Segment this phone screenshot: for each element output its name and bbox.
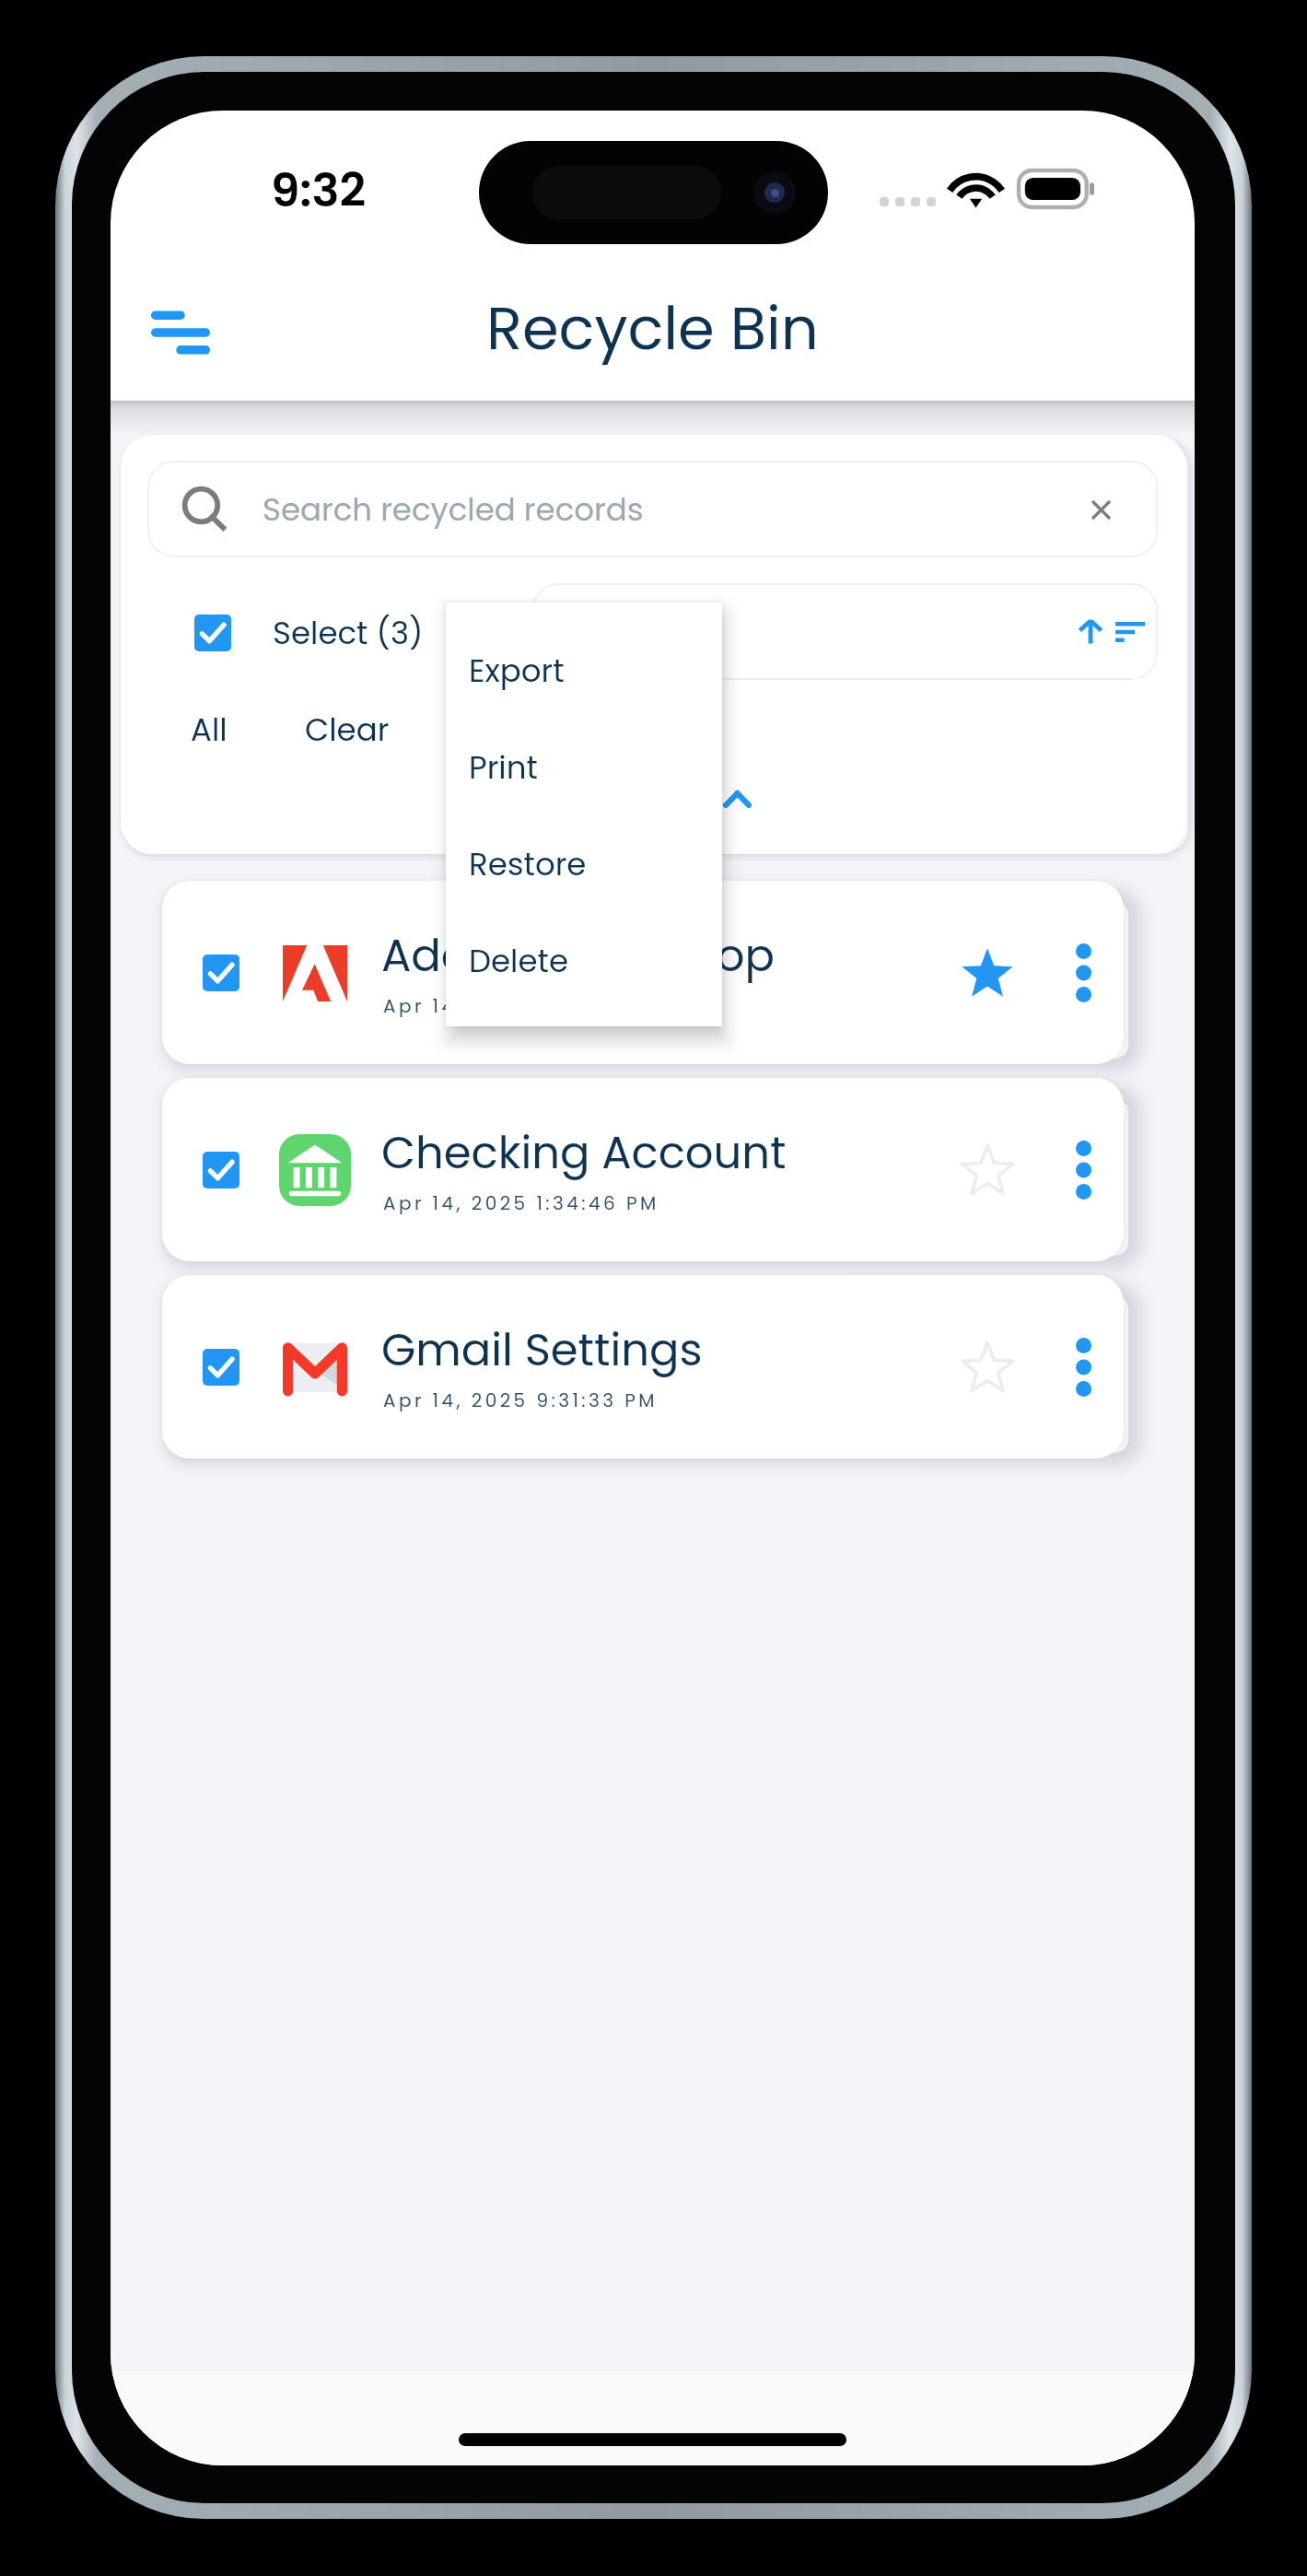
button[interactable]: Clear search <box>1069 478 1132 541</box>
staticText: Restore <box>469 842 587 886</box>
button[interactable]: Gmail Settings <box>162 1275 1124 1458</box>
button[interactable]: Search recycled records <box>147 461 1158 557</box>
staticText: Apr 14, 2025 9:31:33 PM <box>383 1388 658 1413</box>
staticText: Export <box>469 649 565 693</box>
staticText: All <box>191 708 228 752</box>
staticText: Adobe Photoshop <box>381 925 775 987</box>
button[interactable]: More options <box>1054 943 1113 1002</box>
button[interactable]: Select (3) <box>194 608 424 658</box>
button[interactable]: Delete <box>446 912 722 1009</box>
button[interactable]: All <box>191 704 228 755</box>
staticText: Checking Account <box>381 1122 787 1184</box>
staticText: Apr 14, 2025 1:34:46 PM <box>383 1190 659 1216</box>
button[interactable]: Checking Account <box>162 1078 1124 1261</box>
button[interactable]: Menu <box>122 274 239 392</box>
staticText: Gmail Settings <box>381 1319 703 1381</box>
button[interactable]: More options <box>1054 1338 1113 1397</box>
staticText: Search recycled records <box>263 487 644 532</box>
staticText: Clear <box>305 708 390 752</box>
button[interactable]: Sort order <box>532 583 1158 680</box>
button[interactable]: Favorite <box>951 1133 1024 1207</box>
button[interactable]: Favorite <box>951 1330 1024 1404</box>
staticText: Recycle Bin <box>486 287 819 370</box>
button[interactable]: Adobe Photoshop <box>162 881 1124 1064</box>
button[interactable]: Favorite <box>951 936 1024 1010</box>
staticText: Delete <box>469 939 569 983</box>
button[interactable]: Clear <box>305 704 390 755</box>
staticText: Apr 14, 2025 4:21:07 PM <box>383 993 658 1019</box>
staticText: Print <box>469 745 538 790</box>
button[interactable]: Export <box>446 622 722 719</box>
button[interactable]: Print <box>446 719 722 815</box>
button[interactable]: More options <box>1054 1141 1113 1200</box>
button[interactable]: Collapse <box>700 767 774 830</box>
staticText: 9:32 <box>271 158 367 223</box>
staticText: Select (3) <box>273 611 424 655</box>
button[interactable]: Restore <box>446 815 722 912</box>
